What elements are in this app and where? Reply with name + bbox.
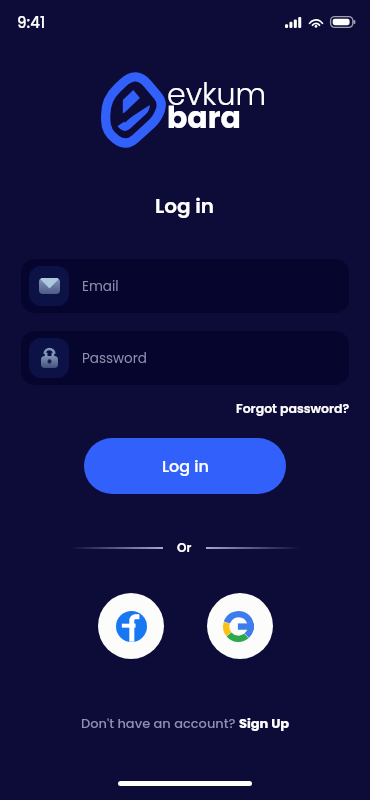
button[interactable]: Sign in with Google bbox=[207, 593, 273, 659]
button[interactable]: Log in bbox=[84, 438, 286, 494]
staticText: Forgot password? bbox=[236, 400, 350, 417]
staticText: Password bbox=[82, 349, 147, 368]
button[interactable]: Sign in with Facebook bbox=[98, 593, 164, 659]
staticText: bara bbox=[167, 97, 241, 139]
staticText: evkum bbox=[167, 74, 267, 116]
staticText: Or bbox=[177, 539, 192, 556]
staticText: Don't have an account? Sign Up bbox=[81, 714, 290, 732]
button[interactable]: Don't have an account? Sign Up bbox=[81, 714, 290, 732]
staticText: 9:41 bbox=[17, 12, 46, 33]
staticText: Log in bbox=[162, 455, 209, 477]
button[interactable]: Email bbox=[21, 259, 349, 313]
staticText: Email bbox=[82, 277, 119, 296]
staticText: Log in bbox=[155, 192, 215, 220]
button[interactable]: Forgot password? bbox=[236, 400, 350, 417]
button[interactable]: Password bbox=[21, 331, 349, 385]
